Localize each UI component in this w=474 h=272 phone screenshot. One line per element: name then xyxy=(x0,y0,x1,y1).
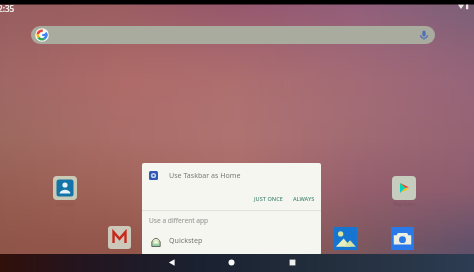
button[interactable]: Photos xyxy=(334,227,357,250)
button[interactable]: Play Store xyxy=(385,176,423,207)
staticText: ALWAYS xyxy=(293,195,315,203)
button[interactable]: Recents xyxy=(284,254,300,272)
button[interactable]: Search xyxy=(31,26,435,44)
staticText: JUST ONCE xyxy=(254,195,283,203)
button[interactable]: Gmail xyxy=(108,226,131,249)
staticText: Quickstep xyxy=(169,235,203,245)
button[interactable]: JUST ONCE xyxy=(252,193,285,205)
staticText: Use a different app xyxy=(149,216,209,225)
staticText: 2:35 xyxy=(0,3,15,14)
button[interactable]: Quickstep xyxy=(142,229,321,251)
button[interactable]: Camera xyxy=(391,227,414,250)
button[interactable]: Home xyxy=(223,254,239,272)
button[interactable]: Contacts xyxy=(46,176,84,207)
button[interactable]: ALWAYS xyxy=(291,193,317,205)
staticText: Use Taskbar as Home xyxy=(169,170,241,180)
button[interactable]: Back xyxy=(164,254,180,272)
